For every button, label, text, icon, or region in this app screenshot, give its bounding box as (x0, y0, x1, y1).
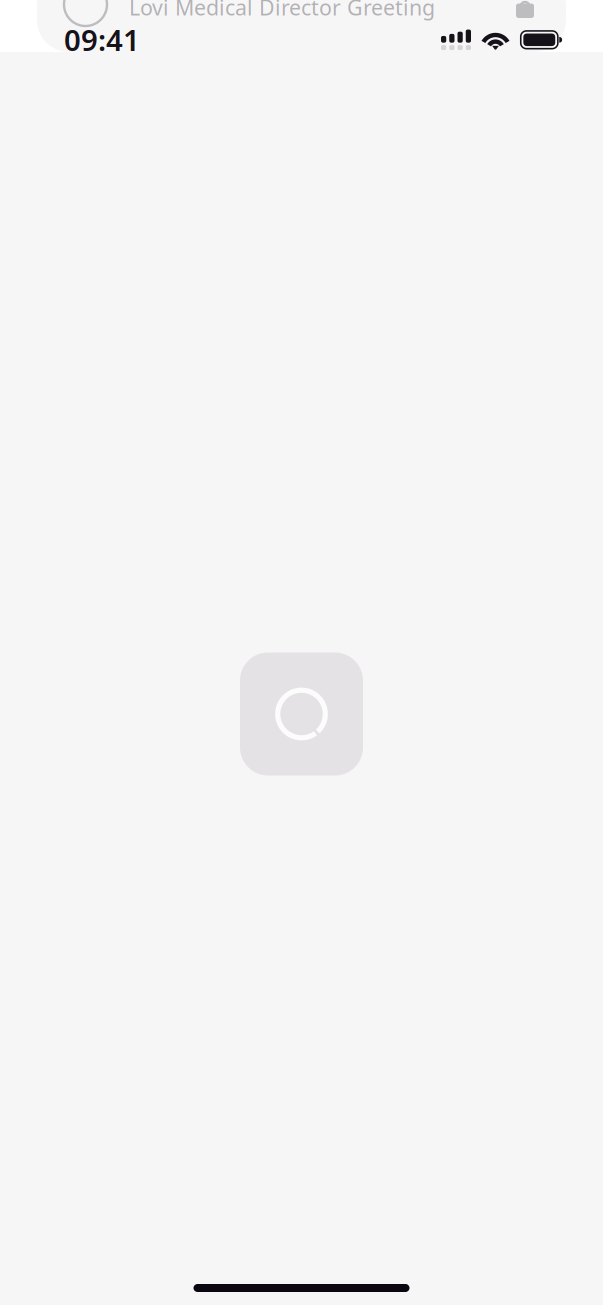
staticText: 09:41 (64, 20, 140, 59)
staticText: Lovi Medical Director Greeting (129, 0, 435, 21)
button[interactable]: Lovi Medical Director Greeting (37, 0, 566, 52)
button[interactable]: Shop (508, 0, 542, 25)
